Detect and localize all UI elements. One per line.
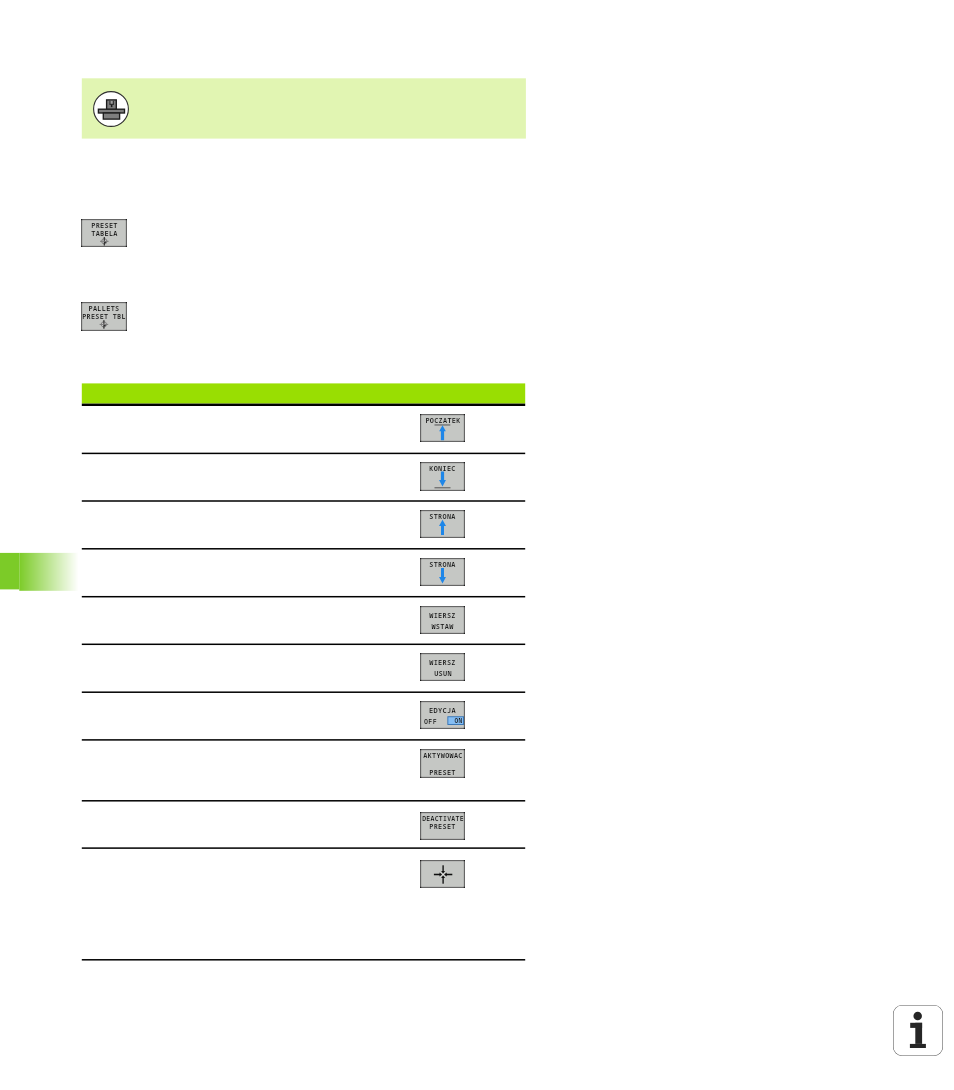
button[interactable]: KONIEC bbox=[420, 462, 465, 491]
button[interactable]: AKTYWOWAC PRESET bbox=[420, 749, 465, 778]
button[interactable]: WIERSZ USUN bbox=[420, 653, 465, 681]
button[interactable]: PRESET TABELA bbox=[81, 219, 127, 247]
button[interactable]: WIERSZ WSTAW bbox=[420, 606, 465, 634]
button[interactable]: POCZATEK bbox=[420, 414, 465, 442]
staticText: ON bbox=[454, 716, 463, 724]
button[interactable]: Set preset here bbox=[420, 860, 465, 888]
button[interactable]: Information bbox=[893, 1005, 943, 1056]
staticText: PALLETS bbox=[88, 304, 120, 313]
staticText: AKTYWOWAC bbox=[423, 751, 463, 760]
staticText: STRONA bbox=[429, 560, 456, 569]
staticText: PRESET TBL bbox=[82, 312, 126, 321]
staticText: WIERSZ bbox=[429, 611, 456, 620]
staticText: WSTAW bbox=[431, 622, 454, 631]
button[interactable]: STRONA down bbox=[420, 558, 465, 586]
staticText: PRESET bbox=[429, 768, 456, 777]
button[interactable]: DEACTIVATE PRESET bbox=[420, 812, 465, 840]
staticText: POCZATEK bbox=[425, 416, 461, 425]
staticText: DEACTIVATE bbox=[422, 814, 464, 823]
staticText: OFF bbox=[424, 717, 437, 726]
staticText: WIERSZ bbox=[429, 658, 456, 667]
button[interactable]: PALLETS PRESET TBL bbox=[81, 302, 127, 331]
staticText: USUN bbox=[434, 669, 452, 678]
staticText: EDYCJA bbox=[429, 706, 456, 716]
staticText: PRESET bbox=[91, 221, 118, 230]
button[interactable]: EDYCJA OFF ON bbox=[420, 701, 465, 729]
button[interactable]: STRONA up bbox=[420, 510, 465, 538]
staticText: KONIEC bbox=[429, 464, 456, 473]
staticText: STRONA bbox=[429, 512, 456, 521]
staticText: PRESET bbox=[429, 822, 456, 831]
staticText: TABELA bbox=[91, 229, 118, 238]
